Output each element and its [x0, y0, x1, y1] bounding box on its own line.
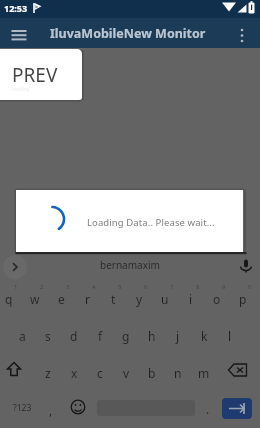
- staticText: m: [198, 365, 210, 381]
- button[interactable]: i: [178, 280, 204, 316]
- staticText: f: [98, 328, 103, 344]
- button[interactable]: t: [100, 280, 126, 316]
- button[interactable]: y: [126, 280, 152, 316]
- staticText: q: [5, 291, 13, 307]
- staticText: k: [201, 328, 208, 344]
- staticText: 3: [66, 283, 70, 291]
- button[interactable]: r: [74, 280, 100, 316]
- staticText: 12:53: [4, 2, 28, 14]
- staticText: p: [239, 291, 247, 307]
- staticText: bernamaxim: [100, 258, 160, 272]
- staticText: IluvaMobileNew Monitor: [50, 25, 206, 42]
- staticText: b: [148, 365, 156, 381]
- button[interactable]: n: [165, 354, 191, 390]
- button[interactable]: Emoji: [66, 395, 90, 419]
- staticText: u: [161, 291, 169, 307]
- staticText: t: [111, 291, 116, 307]
- staticText: e: [58, 291, 65, 307]
- staticText: 0: [248, 283, 252, 291]
- button[interactable]: More options: [230, 18, 254, 48]
- button[interactable]: Voice input: [236, 256, 256, 276]
- button[interactable]: j: [165, 317, 191, 353]
- button[interactable]: z: [35, 354, 61, 390]
- button[interactable]: b: [139, 354, 165, 390]
- button[interactable]: e: [48, 280, 74, 316]
- staticText: 2: [40, 283, 44, 291]
- staticText: d: [70, 328, 78, 344]
- staticText: a: [19, 328, 26, 344]
- staticText: o: [213, 291, 221, 307]
- button[interactable]: Enter: [222, 398, 252, 419]
- staticText: .: [206, 401, 210, 417]
- staticText: j: [176, 328, 180, 344]
- button[interactable]: w: [22, 280, 48, 316]
- staticText: v: [123, 365, 130, 381]
- staticText: c: [97, 365, 103, 381]
- button[interactable]: Shift: [1, 357, 27, 383]
- staticText: PREV: [12, 62, 58, 88]
- button[interactable]: f: [87, 317, 113, 353]
- button[interactable]: PREV: [0, 49, 82, 100]
- staticText: 1: [14, 283, 18, 291]
- button[interactable]: p: [230, 280, 256, 316]
- staticText: n: [174, 365, 182, 381]
- staticText: ,: [49, 402, 53, 418]
- button[interactable]: m: [191, 354, 217, 390]
- button[interactable]: s: [35, 317, 61, 353]
- staticText: z: [45, 365, 51, 381]
- staticText: loading: [12, 86, 30, 93]
- staticText: s: [45, 328, 51, 344]
- button[interactable]: q: [0, 280, 22, 316]
- staticText: 8: [196, 283, 200, 291]
- button[interactable]: h: [139, 317, 165, 353]
- button[interactable]: ,: [41, 396, 61, 420]
- button[interactable]: k: [191, 317, 217, 353]
- button[interactable]: Open navigation menu: [5, 18, 33, 48]
- button[interactable]: l: [217, 317, 243, 353]
- staticText: y: [136, 291, 143, 307]
- staticText: i: [189, 291, 193, 307]
- button[interactable]: v: [113, 354, 139, 390]
- button[interactable]: c: [87, 354, 113, 390]
- staticText: 6: [144, 283, 148, 291]
- staticText: r: [85, 291, 90, 307]
- staticText: x: [71, 365, 78, 381]
- button[interactable]: g: [113, 317, 139, 353]
- staticText: g: [122, 328, 130, 344]
- button[interactable]: o: [204, 280, 230, 316]
- button[interactable]: d: [61, 317, 87, 353]
- button[interactable]: Next suggestions: [3, 255, 27, 279]
- staticText: l: [228, 328, 232, 344]
- button[interactable]: ?123: [4, 396, 40, 420]
- button[interactable]: Backspace: [225, 357, 251, 383]
- staticText: 5: [118, 283, 122, 291]
- button[interactable]: x: [61, 354, 87, 390]
- staticText: ?123: [13, 402, 32, 414]
- button[interactable]: a: [9, 317, 35, 353]
- staticText: w: [30, 291, 40, 307]
- staticText: h: [148, 328, 156, 344]
- button[interactable]: u: [152, 280, 178, 316]
- staticText: 4: [92, 283, 96, 291]
- staticText: Loading Data.. Please wait...: [87, 216, 215, 229]
- staticText: 7: [170, 283, 174, 291]
- staticText: 9: [222, 283, 226, 291]
